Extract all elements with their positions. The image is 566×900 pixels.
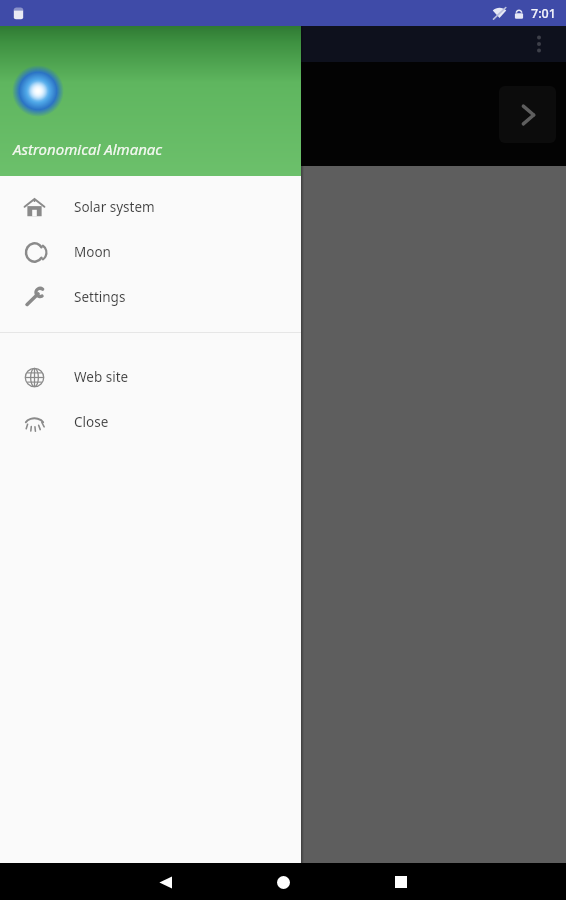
button[interactable]: Home xyxy=(265,864,301,900)
staticText: 7:01 xyxy=(531,5,556,22)
button[interactable]: Close xyxy=(0,399,301,444)
button[interactable]: Next xyxy=(499,86,556,143)
staticText: Web site xyxy=(74,368,129,386)
staticText: Close xyxy=(74,413,109,431)
button[interactable]: Settings xyxy=(0,274,301,319)
button[interactable]: Web site xyxy=(0,354,301,399)
button[interactable]: Recent apps xyxy=(383,864,419,900)
staticText: Astronomical Almanac xyxy=(76,33,248,55)
staticText: Solar system xyxy=(74,198,155,216)
button[interactable]: Back xyxy=(147,864,183,900)
staticText: Settings xyxy=(74,288,126,306)
staticText: Astronomical Almanac xyxy=(13,139,163,159)
button[interactable]: Moon xyxy=(0,229,301,274)
button[interactable]: Back xyxy=(20,29,50,59)
button[interactable]: More options xyxy=(524,29,554,59)
button[interactable]: Solar system xyxy=(0,184,301,229)
staticText: Congratulations, winner xyxy=(18,84,279,115)
staticText: Moon xyxy=(74,243,111,261)
